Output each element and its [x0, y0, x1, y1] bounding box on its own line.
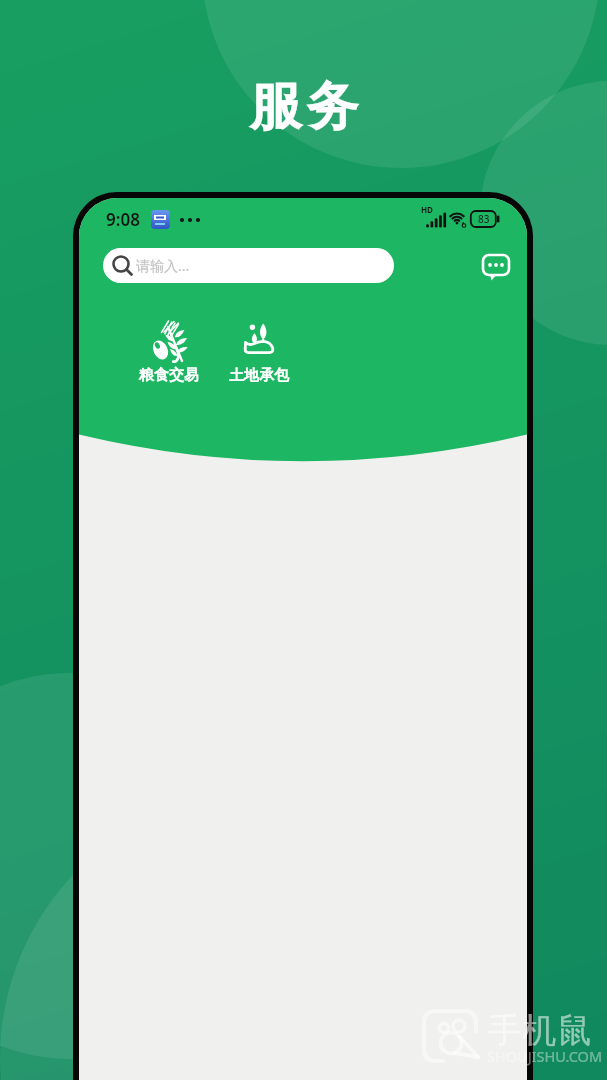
staticText: 请输入...	[136, 256, 190, 275]
staticText: 手机鼠	[487, 1009, 592, 1052]
staticText: SHOUJISHU.COM	[487, 1046, 603, 1066]
staticText: 粮食交易	[139, 366, 199, 385]
staticText: 服务	[247, 74, 361, 140]
button[interactable]	[481, 251, 511, 281]
button[interactable]: 请输入...	[103, 248, 394, 283]
staticText: HD	[421, 204, 433, 215]
staticText: 83	[478, 212, 490, 226]
staticText: 土地承包	[229, 366, 289, 385]
staticText: 9:08	[106, 208, 140, 231]
button[interactable]: 土地承包	[214, 319, 304, 385]
button[interactable]: 粮食交易	[124, 319, 214, 385]
